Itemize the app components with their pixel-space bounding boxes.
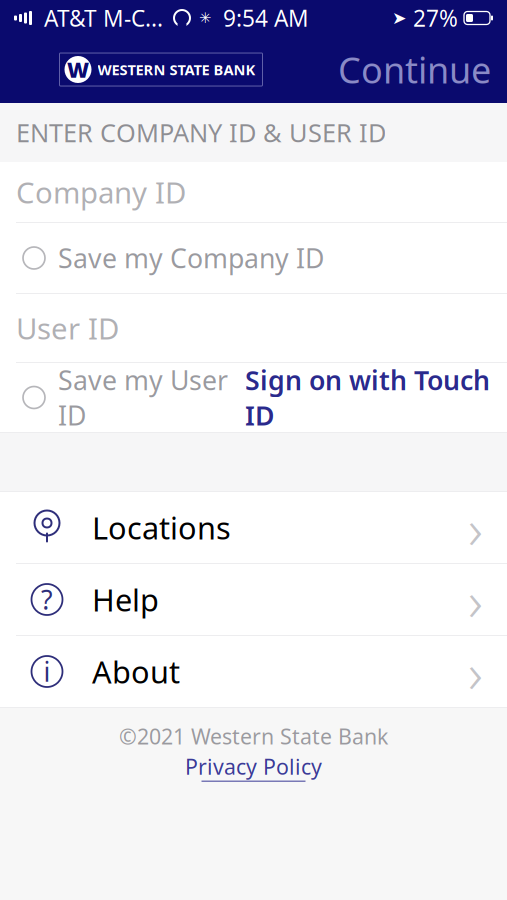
staticText: › (468, 634, 483, 709)
staticText: Save my User ID (58, 362, 228, 433)
staticText: W (67, 55, 89, 84)
staticText: ? (41, 582, 53, 617)
staticText: ➤ (392, 8, 407, 28)
staticText: Privacy Policy (185, 752, 322, 781)
button[interactable]: Privacy Policy (185, 752, 322, 782)
staticText: 27% (407, 3, 464, 33)
staticText: ENTER COMPANY ID & USER ID (16, 116, 386, 149)
staticText: i (43, 654, 50, 689)
button[interactable]: Locations (0, 492, 507, 563)
staticText: › (468, 490, 483, 565)
staticText: 9:54 AM (211, 3, 309, 33)
button[interactable]: Sign on with Touch ID (245, 346, 507, 449)
button[interactable]: Continue (322, 38, 507, 101)
staticText: About (92, 651, 180, 692)
button[interactable]: Save my User ID (0, 346, 228, 449)
staticText: Continue (338, 46, 491, 93)
button[interactable]: ? (0, 564, 507, 635)
staticText: Help (92, 579, 159, 620)
staticText: ✳ (199, 10, 211, 26)
button[interactable]: Save my Company ID (0, 224, 324, 292)
staticText: User ID (16, 308, 119, 347)
staticText: Sign on with Touch ID (245, 362, 490, 433)
staticText: Locations (92, 507, 231, 548)
staticText: Save my Company ID (58, 240, 324, 276)
staticText: AT&T M-C... (32, 3, 163, 33)
staticText: › (468, 562, 483, 637)
staticText: Company ID (16, 172, 186, 211)
staticText: WESTERN STATE BANK (97, 60, 255, 79)
staticText: ©2021 Western State Bank (119, 722, 388, 750)
button[interactable]: i (0, 636, 507, 707)
